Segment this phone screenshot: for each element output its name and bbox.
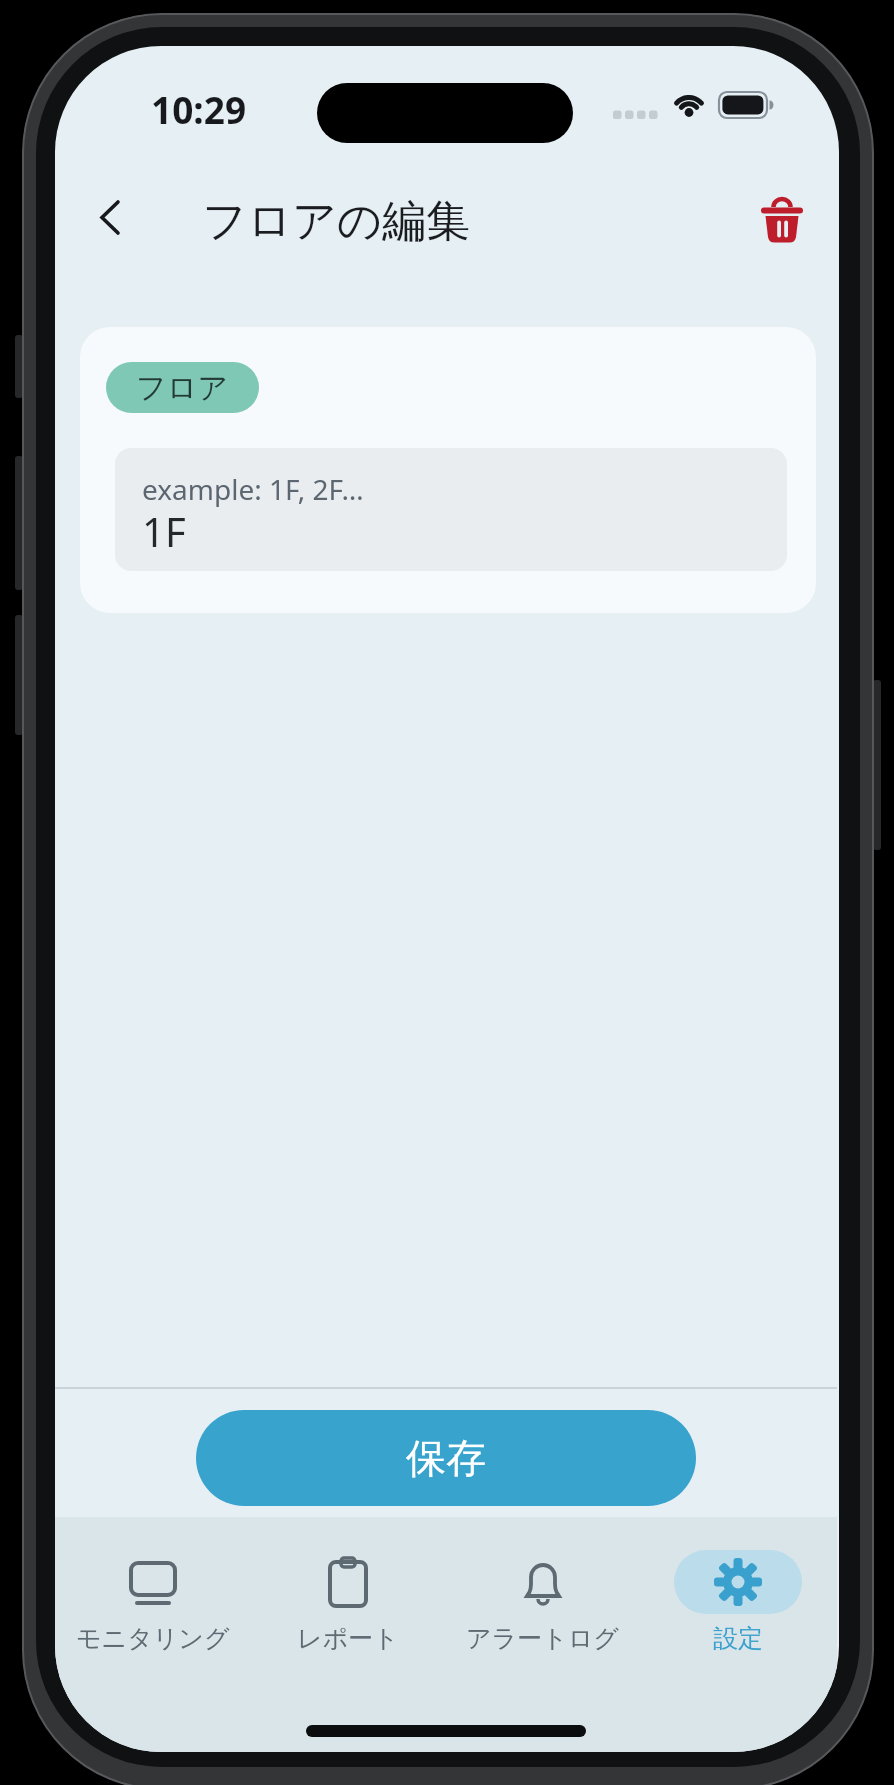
button[interactable]: example: 1F, 2F… [115,448,787,571]
button[interactable] [83,186,147,250]
button[interactable] [756,195,808,247]
staticText: モニタリング [76,1623,230,1654]
button[interactable]: 保存 [196,1410,696,1506]
staticText: フロア [136,369,229,407]
staticText: レポート [297,1623,399,1654]
button[interactable]: レポート [250,1517,445,1654]
button[interactable]: モニタリング [55,1517,250,1654]
button[interactable]: アラートログ [445,1517,640,1654]
staticText: 10:29 [151,84,247,134]
staticText: 設定 [713,1623,763,1654]
staticText: アラートログ [466,1623,619,1654]
button[interactable]: 設定 [640,1517,835,1654]
staticText: 1F [142,504,186,558]
staticText: 保存 [406,1433,486,1483]
staticText: example: 1F, 2F… [142,470,364,508]
staticText: フロアの編集 [202,194,471,249]
